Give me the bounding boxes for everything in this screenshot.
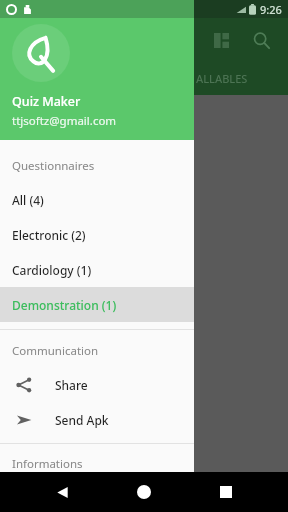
staticText: Informations bbox=[12, 456, 83, 472]
staticText: Questionnaires bbox=[12, 158, 95, 174]
button[interactable]: Cardiology (1) bbox=[0, 252, 194, 287]
button[interactable]: Electronic (2) bbox=[0, 217, 194, 252]
staticText: Demonstration (1) bbox=[12, 297, 117, 313]
staticText: Communication bbox=[12, 343, 99, 359]
button[interactable]: Home bbox=[124, 472, 164, 512]
staticText: Share bbox=[55, 377, 88, 393]
button[interactable]: Quiz Maker bbox=[0, 18, 194, 140]
staticText: All (4) bbox=[12, 192, 44, 208]
button[interactable]: Share bbox=[0, 367, 194, 402]
staticText: Cardiology (1) bbox=[12, 262, 92, 278]
button[interactable]: Back bbox=[42, 472, 82, 512]
button[interactable]: Send Apk bbox=[0, 402, 194, 437]
button[interactable]: TOS bbox=[0, 480, 194, 512]
staticText: Electronic (2) bbox=[12, 227, 86, 243]
staticText: 9:26 bbox=[260, 2, 282, 17]
staticText: ttjsoftz@gmail.com bbox=[12, 113, 117, 129]
staticText: Send Apk bbox=[55, 412, 109, 428]
button[interactable]: All (4) bbox=[0, 182, 194, 217]
staticText: Quiz Maker bbox=[12, 93, 81, 110]
button[interactable]: Grid view bbox=[204, 23, 238, 57]
staticText: TOS bbox=[55, 488, 78, 504]
button[interactable]: Search bbox=[244, 23, 278, 57]
button[interactable]: Demonstration (1) bbox=[0, 287, 194, 322]
button[interactable]: Recent apps bbox=[206, 472, 246, 512]
staticText: ALLABLES bbox=[196, 71, 248, 86]
